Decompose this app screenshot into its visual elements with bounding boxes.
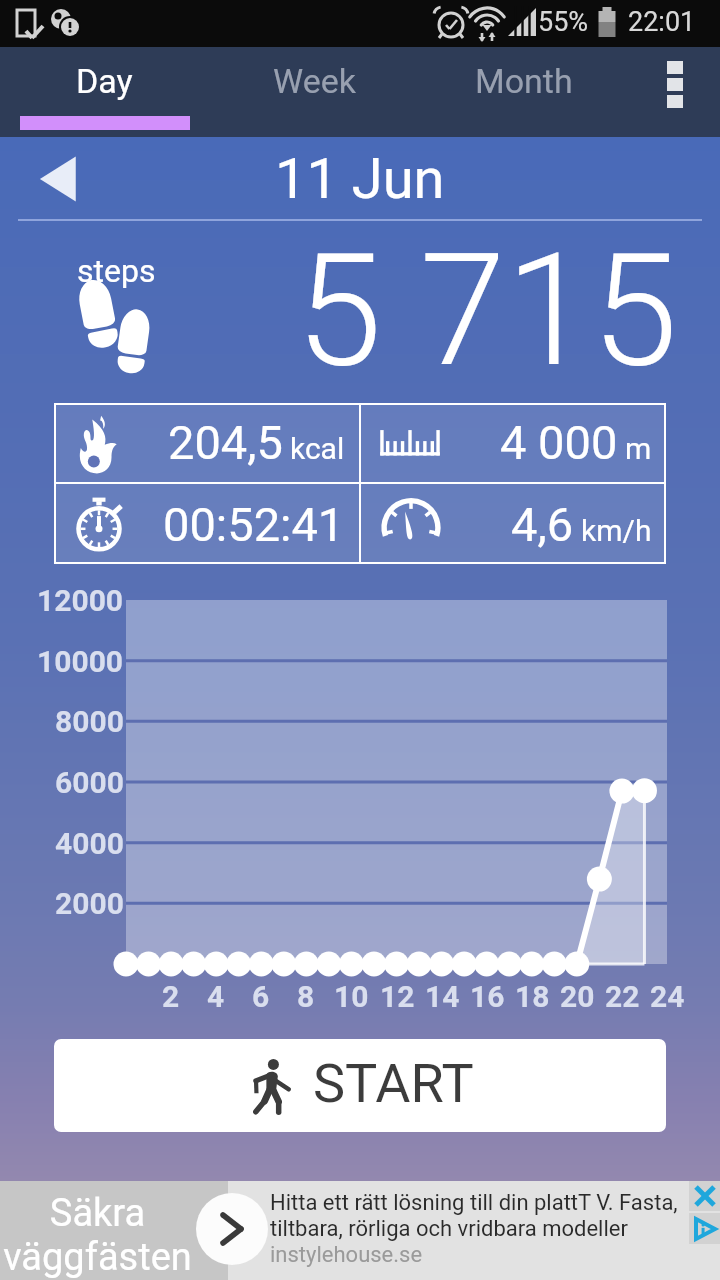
staticText: Month (475, 61, 573, 101)
staticText: 2 (162, 979, 180, 1014)
staticText: m (625, 431, 652, 466)
staticText: km/h (581, 513, 652, 548)
staticText: 11 Jun (275, 146, 445, 212)
button[interactable]: START (54, 1039, 666, 1132)
staticText: 2000 (55, 886, 124, 921)
staticText: instylehouse.se (270, 1242, 423, 1268)
staticText: 24 (650, 979, 685, 1014)
staticText: 8 (297, 979, 315, 1014)
staticText: 4,6 (511, 497, 574, 552)
staticText: 6 (252, 979, 270, 1014)
button[interactable]: Day (0, 47, 209, 137)
staticText: Week (273, 61, 356, 101)
button[interactable]: Open ad (196, 1193, 268, 1265)
staticText: 6000 (55, 765, 124, 800)
button[interactable]: 4,6 (361, 484, 666, 564)
button[interactable]: Previous day (22, 151, 78, 207)
button[interactable]: 00:52:41 (54, 484, 359, 564)
staticText: START (313, 1052, 474, 1115)
staticText: 00:52:41 (163, 497, 345, 552)
button[interactable]: 4 000 (361, 403, 666, 482)
button[interactable]: 204,5 (54, 403, 359, 482)
staticText: 22 (605, 979, 640, 1014)
button[interactable]: Ad choices (689, 1213, 720, 1244)
staticText: 20 (560, 979, 595, 1014)
staticText: tiltbara, rörliga och vridbara modeller (270, 1216, 628, 1242)
staticText: 4 000 (500, 415, 618, 470)
staticText: steps (77, 252, 156, 290)
staticText: 12 (380, 979, 415, 1014)
button[interactable]: Close ad (689, 1181, 720, 1211)
staticText: Säkra väggfästen (3, 1191, 192, 1279)
button[interactable]: Month (419, 47, 629, 137)
staticText: 14 (425, 979, 460, 1014)
staticText: Hitta ett rätt lösning till din plattT V… (270, 1190, 678, 1216)
button[interactable]: Säkra väggfästen (0, 1181, 228, 1280)
staticText: kcal (290, 431, 345, 466)
staticText: 10 (334, 979, 369, 1014)
staticText: 16 (470, 979, 505, 1014)
staticText: 4000 (55, 826, 124, 861)
staticText: 10000 (37, 644, 124, 679)
staticText: 4 (207, 979, 225, 1014)
staticText: 8000 (55, 704, 124, 739)
staticText: 12000 (37, 583, 124, 618)
staticText: 18 (515, 979, 550, 1014)
staticText: 55% (538, 6, 589, 38)
staticText: 22:01 (628, 6, 696, 38)
button[interactable]: Week (209, 47, 419, 137)
staticText: 204,5 (168, 415, 283, 470)
button[interactable]: More options (629, 47, 720, 137)
staticText: Day (76, 61, 133, 101)
staticText: 5 715 (296, 220, 678, 380)
